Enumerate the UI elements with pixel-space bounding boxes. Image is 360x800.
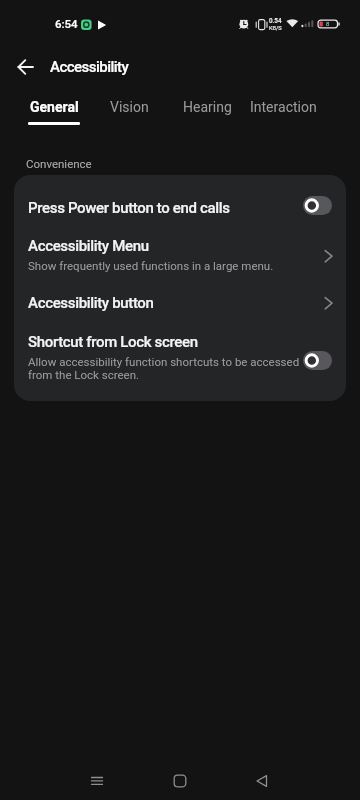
staticText: Allow accessibility function shortcuts t… <box>28 355 300 381</box>
button[interactable] <box>159 757 201 800</box>
staticText: Shortcut from Lock screen <box>28 333 198 351</box>
button[interactable]: Vision <box>110 99 149 122</box>
button[interactable] <box>241 757 283 800</box>
button[interactable] <box>303 351 332 370</box>
button[interactable] <box>76 757 118 800</box>
staticText: 6:54 <box>55 17 78 30</box>
button[interactable] <box>303 196 332 215</box>
button[interactable]: General <box>28 99 80 125</box>
button[interactable] <box>8 48 46 86</box>
staticText: Accessibility <box>50 58 129 76</box>
button[interactable]: Accessibility Menu <box>14 231 346 281</box>
button[interactable]: Press Power button to end calls <box>14 183 346 231</box>
staticText: 0.54 <box>269 17 282 24</box>
staticText: Accessibility Menu <box>28 237 149 255</box>
button[interactable]: Shortcut from Lock screen <box>14 325 346 395</box>
staticText: Hearing <box>183 99 232 115</box>
staticText: Press Power button to end calls <box>28 199 230 217</box>
button[interactable]: Interaction <box>250 99 317 122</box>
staticText: KB/S <box>269 25 282 32</box>
staticText: Interaction <box>250 99 317 115</box>
staticText: Convenience <box>26 157 92 170</box>
button[interactable]: Accessibility button <box>14 281 346 325</box>
staticText: Show frequently used functions in a larg… <box>28 259 274 272</box>
staticText: Accessibility button <box>28 294 154 312</box>
staticText: General <box>30 99 79 115</box>
button[interactable]: Hearing <box>183 99 232 122</box>
staticText: 8 <box>326 20 330 27</box>
staticText: Vision <box>110 99 149 115</box>
